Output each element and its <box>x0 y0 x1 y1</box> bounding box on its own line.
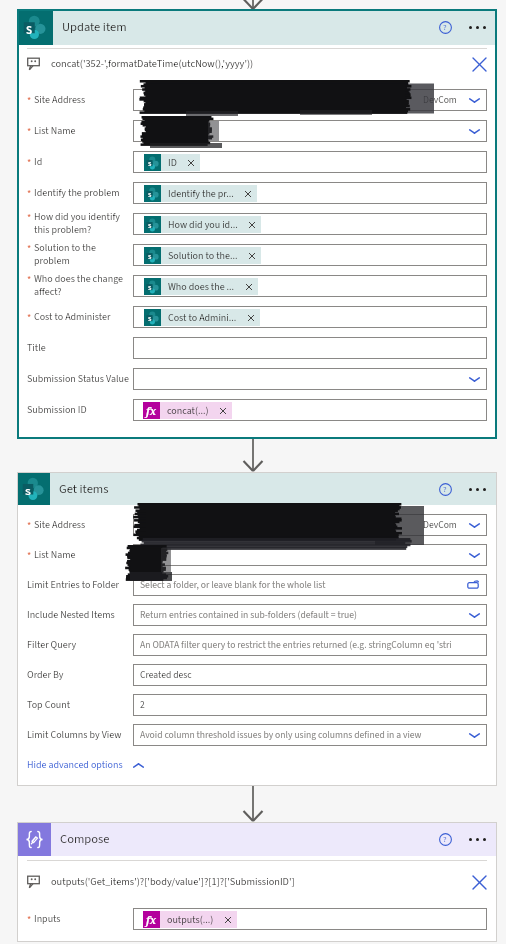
button[interactable]: Hide advanced options <box>27 750 497 780</box>
staticText: S <box>148 160 152 169</box>
button[interactable]: Return entries contained in sub-folders … <box>133 604 487 626</box>
staticText: fx <box>146 913 157 927</box>
staticText: S <box>148 315 152 324</box>
button[interactable]: Select a folder, or leave blank for the … <box>133 574 487 596</box>
staticText: ? <box>443 21 447 33</box>
button[interactable]: More options <box>466 828 488 850</box>
button[interactable]: Help <box>434 478 456 500</box>
staticText: S <box>148 222 152 231</box>
button[interactable]: Avoid column threshold issues by only us… <box>133 724 487 746</box>
staticText: S <box>148 253 152 262</box>
staticText: Submission ID <box>27 403 87 417</box>
staticText: * <box>27 273 32 287</box>
staticText: ID <box>168 156 177 170</box>
staticText: Who does the change affect? <box>34 272 133 299</box>
staticText: * <box>27 94 32 108</box>
staticText: DevCom <box>423 518 457 532</box>
staticText: Hide advanced options <box>27 758 123 772</box>
button[interactable]: DevCom <box>133 89 487 111</box>
staticText: List Name <box>34 124 76 138</box>
staticText: Update item <box>62 18 127 36</box>
staticText: Include Nested Items <box>27 608 115 622</box>
staticText: * <box>27 187 32 201</box>
staticText: Solution to the problem <box>34 241 133 268</box>
staticText: * <box>27 156 32 170</box>
staticText: fx <box>146 404 157 418</box>
staticText: DevCom <box>423 93 457 107</box>
staticText: List Name <box>34 548 76 562</box>
staticText: An ODATA filter query to restrict the en… <box>140 638 452 652</box>
button[interactable]: 2 <box>133 694 487 716</box>
staticText: ? <box>443 833 447 845</box>
button[interactable] <box>133 544 487 566</box>
button[interactable]: Close <box>469 54 489 74</box>
button[interactable]: Created desc <box>133 664 487 686</box>
button[interactable]: Connector icon <box>17 822 51 856</box>
staticText: Solution to the... <box>168 249 238 263</box>
staticText: ? <box>443 483 447 495</box>
staticText: Top Count <box>27 698 71 712</box>
staticText: * <box>27 519 32 533</box>
staticText: How did you identify this problem? <box>34 210 133 237</box>
button[interactable]: Help <box>434 828 456 850</box>
staticText: 2 <box>140 698 145 712</box>
staticText: Id <box>34 155 43 169</box>
staticText: * <box>27 311 32 325</box>
button[interactable]: S <box>133 306 487 328</box>
button[interactable] <box>133 337 487 359</box>
staticText: Limit Entries to Folder <box>27 578 120 592</box>
staticText: Title <box>27 341 46 355</box>
staticText: Who does the ... <box>168 280 235 294</box>
staticText: Order By <box>27 668 64 682</box>
staticText: Avoid column threshold issues by only us… <box>140 728 422 742</box>
button[interactable]: More options <box>466 478 488 500</box>
button[interactable] <box>133 368 487 390</box>
staticText: Cost to Admini... <box>168 311 237 325</box>
staticText: How did you id... <box>168 218 238 232</box>
staticText: Compose <box>60 830 110 848</box>
button[interactable]: An ODATA filter query to restrict the en… <box>133 634 487 656</box>
staticText: Site Address <box>34 93 86 107</box>
button[interactable]: fx <box>133 399 487 421</box>
button[interactable]: Connector icon <box>17 9 53 45</box>
button[interactable]: S <box>133 182 487 204</box>
button[interactable]: S <box>133 151 487 173</box>
staticText: Filter Query <box>27 638 77 652</box>
staticText: concat('352-',formatDateTime(utcNow(),'y… <box>51 56 254 71</box>
staticText: Identify the pr... <box>168 187 234 201</box>
staticText: * <box>27 211 32 225</box>
staticText: * <box>27 549 32 563</box>
staticText: Cost to Administer <box>34 310 111 324</box>
button[interactable]: S <box>133 275 487 297</box>
staticText: outputs('Get_items')?['body/value']?[1]?… <box>51 874 295 889</box>
staticText: S <box>148 191 152 200</box>
staticText: Site Address <box>34 518 86 532</box>
button[interactable]: DevCom <box>133 514 487 536</box>
staticText: * <box>27 913 32 927</box>
staticText: Submission Status Value <box>27 372 129 386</box>
button[interactable]: More options <box>466 16 488 38</box>
button[interactable] <box>133 120 487 142</box>
button[interactable]: S <box>133 213 487 235</box>
staticText: Identify the problem <box>34 186 120 200</box>
button[interactable]: fx <box>133 908 487 930</box>
staticText: outputs(...) <box>167 913 214 927</box>
staticText: Limit Columns by View <box>27 728 122 742</box>
staticText: S <box>26 23 32 39</box>
staticText: Inputs <box>34 912 61 926</box>
staticText: * <box>27 125 32 139</box>
staticText: Return entries contained in sub-folders … <box>140 608 357 622</box>
staticText: * <box>27 242 32 256</box>
button[interactable]: Help <box>434 16 456 38</box>
button[interactable]: S <box>133 244 487 266</box>
staticText: Get items <box>59 480 109 498</box>
staticText: S <box>148 284 152 293</box>
staticText: Created desc <box>140 668 192 682</box>
staticText: S <box>25 484 31 499</box>
staticText: concat(...) <box>167 404 209 418</box>
button[interactable]: Close <box>469 872 489 892</box>
button[interactable]: Connector icon <box>17 472 50 505</box>
staticText: Select a folder, or leave blank for the … <box>140 578 326 592</box>
